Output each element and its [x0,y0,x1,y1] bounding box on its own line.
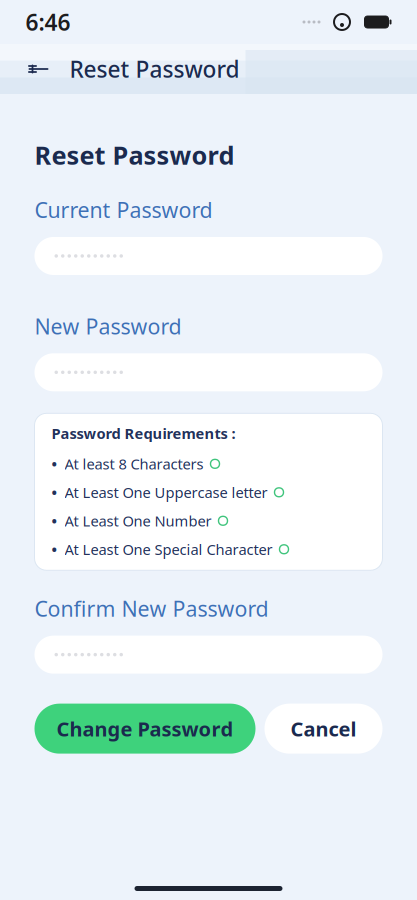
button[interactable]: Change Password [34,704,255,754]
button[interactable]: Cancel [264,704,382,754]
staticText: New Password [34,312,181,340]
staticText: Confirm New Password [34,594,268,623]
staticText: At Least One Number [64,511,211,530]
staticText: At least 8 Characters [64,454,203,474]
staticText: Reset Password [34,138,234,172]
staticText: At Least One Special Character [64,539,272,559]
staticText: • [51,539,57,559]
staticText: Current Password [34,196,212,224]
staticText: Password Requirements : [51,424,235,443]
staticText: Change Password [56,715,233,742]
staticText: At Least One Uppercase letter [64,483,267,502]
staticText: Cancel [290,715,356,742]
button[interactable]: Back [21,52,55,86]
staticText: • [51,483,57,502]
staticText: • [51,511,57,530]
staticText: • [51,454,57,474]
staticText: 6:46 [25,7,70,37]
staticText: Reset Password [69,54,239,84]
